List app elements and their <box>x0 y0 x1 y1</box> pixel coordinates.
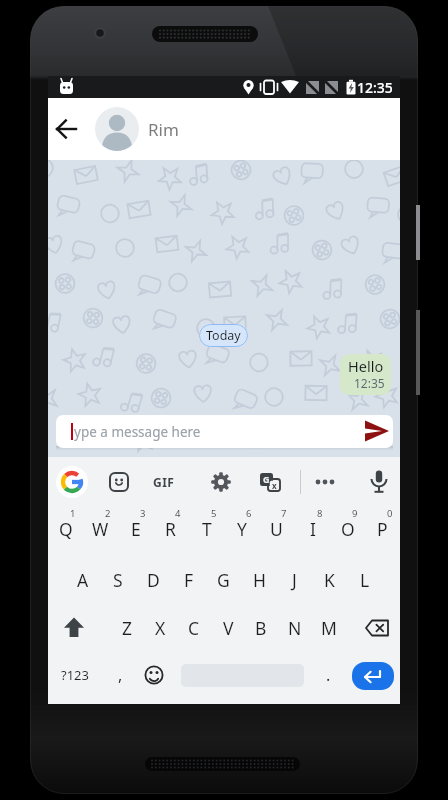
staticText: . <box>326 664 331 686</box>
button[interactable]: J <box>277 558 312 602</box>
staticText: E <box>131 517 141 541</box>
staticText: 12:35 <box>354 375 385 391</box>
button[interactable] <box>357 606 397 650</box>
button[interactable]: C <box>177 606 211 650</box>
staticText: 8 <box>317 507 323 520</box>
button[interactable]: I <box>295 507 330 551</box>
staticText: D <box>147 568 160 592</box>
staticText: 12:35 <box>357 78 393 97</box>
staticText: 5 <box>211 507 217 520</box>
button[interactable]: Y <box>224 507 259 551</box>
staticText: G <box>263 473 270 485</box>
staticText: F <box>184 568 194 592</box>
staticText: C <box>188 616 200 640</box>
staticText: B <box>255 616 267 640</box>
button[interactable] <box>363 466 395 498</box>
staticText: ?123 <box>61 666 89 684</box>
button[interactable]: ?123 <box>53 653 97 697</box>
staticText: H <box>253 568 266 592</box>
staticText: ype a message here <box>74 423 201 441</box>
button[interactable] <box>352 662 394 690</box>
button[interactable]: B <box>244 606 278 650</box>
button[interactable]: D <box>136 558 171 602</box>
staticText: x <box>272 480 277 490</box>
staticText: K <box>324 568 335 592</box>
staticText: Rim <box>148 118 179 141</box>
button[interactable]: K <box>312 558 347 602</box>
button[interactable]: X <box>143 606 177 650</box>
button[interactable] <box>205 466 237 498</box>
button[interactable]: W <box>83 507 118 551</box>
button[interactable]: H <box>242 558 277 602</box>
staticText: U <box>270 517 283 541</box>
button[interactable]: V <box>211 606 245 650</box>
button[interactable] <box>309 466 341 498</box>
staticText: L <box>360 568 370 592</box>
staticText: Y <box>237 517 247 541</box>
button[interactable] <box>54 606 94 650</box>
staticText: V <box>223 616 234 640</box>
staticText: P <box>377 517 388 541</box>
staticText: N <box>288 616 302 640</box>
staticText: 9 <box>352 507 358 520</box>
staticText: O <box>341 517 355 541</box>
button[interactable]: U <box>259 507 294 551</box>
staticText: I <box>310 517 316 541</box>
staticText: A <box>77 568 89 592</box>
button[interactable]: T <box>189 507 224 551</box>
button[interactable]: L <box>347 558 382 602</box>
staticText: 6 <box>246 507 252 520</box>
staticText: Hello <box>348 356 384 376</box>
button[interactable]: Q <box>48 507 83 551</box>
button[interactable]: O <box>330 507 365 551</box>
staticText: 4 <box>175 507 181 520</box>
staticText: 7 <box>281 507 287 520</box>
button[interactable]: R <box>153 507 188 551</box>
button[interactable]: GIF <box>148 466 180 498</box>
staticText: 3 <box>140 507 146 520</box>
staticText: R <box>165 517 176 541</box>
staticText: Today <box>206 327 241 344</box>
staticText: , <box>118 664 123 686</box>
staticText: Z <box>122 616 133 640</box>
button[interactable]: A <box>65 558 100 602</box>
staticText: S <box>113 568 123 592</box>
button[interactable]: . <box>312 653 344 697</box>
button[interactable] <box>95 107 139 151</box>
staticText: 1 <box>70 507 76 520</box>
staticText: X <box>155 616 166 640</box>
staticText: Q <box>59 517 73 541</box>
button[interactable] <box>362 419 390 443</box>
button[interactable]: M <box>312 606 346 650</box>
staticText: W <box>92 517 109 541</box>
button[interactable]: Z <box>110 606 144 650</box>
staticText: 0 <box>387 507 393 520</box>
staticText: G <box>217 568 230 592</box>
button[interactable]: P <box>365 507 400 551</box>
staticText: M <box>321 616 337 640</box>
staticText: J <box>292 568 297 592</box>
button[interactable]: ype a message here <box>56 415 393 448</box>
button[interactable]: G <box>206 558 241 602</box>
button[interactable]: G <box>254 466 286 498</box>
button[interactable]: , <box>104 653 136 697</box>
button[interactable]: N <box>278 606 312 650</box>
button[interactable]: F <box>171 558 206 602</box>
staticText: GIF <box>153 474 175 490</box>
button[interactable] <box>103 466 135 498</box>
button[interactable] <box>50 113 82 145</box>
button[interactable] <box>56 466 88 498</box>
button[interactable]: S <box>100 558 135 602</box>
staticText: 2 <box>105 507 111 520</box>
staticText: T <box>202 517 212 541</box>
button[interactable] <box>138 653 170 697</box>
button[interactable]: E <box>118 507 153 551</box>
